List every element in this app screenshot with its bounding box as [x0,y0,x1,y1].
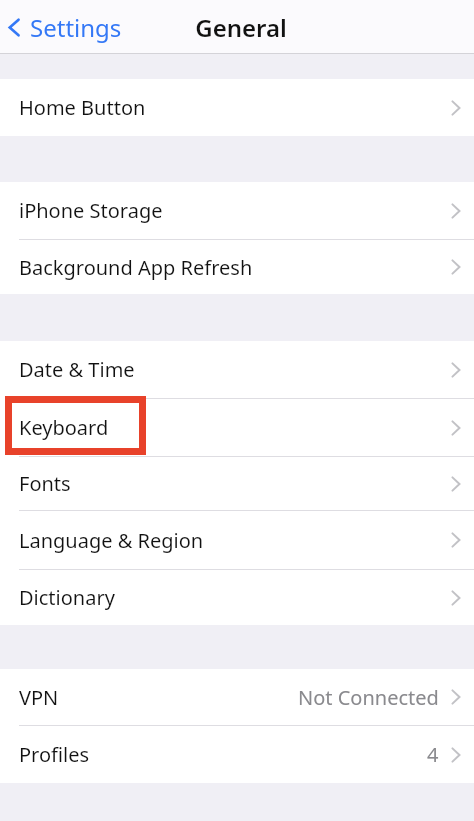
staticText: Profiles [19,741,90,768]
staticText: 4 [427,741,439,768]
staticText: Dictionary [19,584,115,611]
button[interactable]: VPN [0,669,474,725]
staticText: Settings [30,11,122,44]
button[interactable]: Home Button [0,79,474,136]
button[interactable]: Background App Refresh [0,240,474,294]
staticText: Date & Time [19,356,135,383]
button[interactable]: iPhone Storage [0,182,474,239]
staticText: VPN [19,684,59,711]
button[interactable]: Settings [0,0,132,54]
staticText: Not Connected [298,684,439,711]
staticText: Fonts [19,470,71,497]
button[interactable]: Keyboard [0,399,474,456]
staticText: Home Button [19,94,146,121]
button[interactable]: Fonts [0,457,474,510]
button[interactable]: Profiles [0,726,474,783]
button[interactable]: Dictionary [0,570,474,625]
staticText: Language & Region [19,527,204,554]
staticText: General [195,11,287,44]
button[interactable]: Date & Time [0,341,474,398]
button[interactable]: Language & Region [0,511,474,569]
staticText: Background App Refresh [19,254,253,281]
staticText: iPhone Storage [19,197,163,224]
staticText: Keyboard [19,414,109,441]
